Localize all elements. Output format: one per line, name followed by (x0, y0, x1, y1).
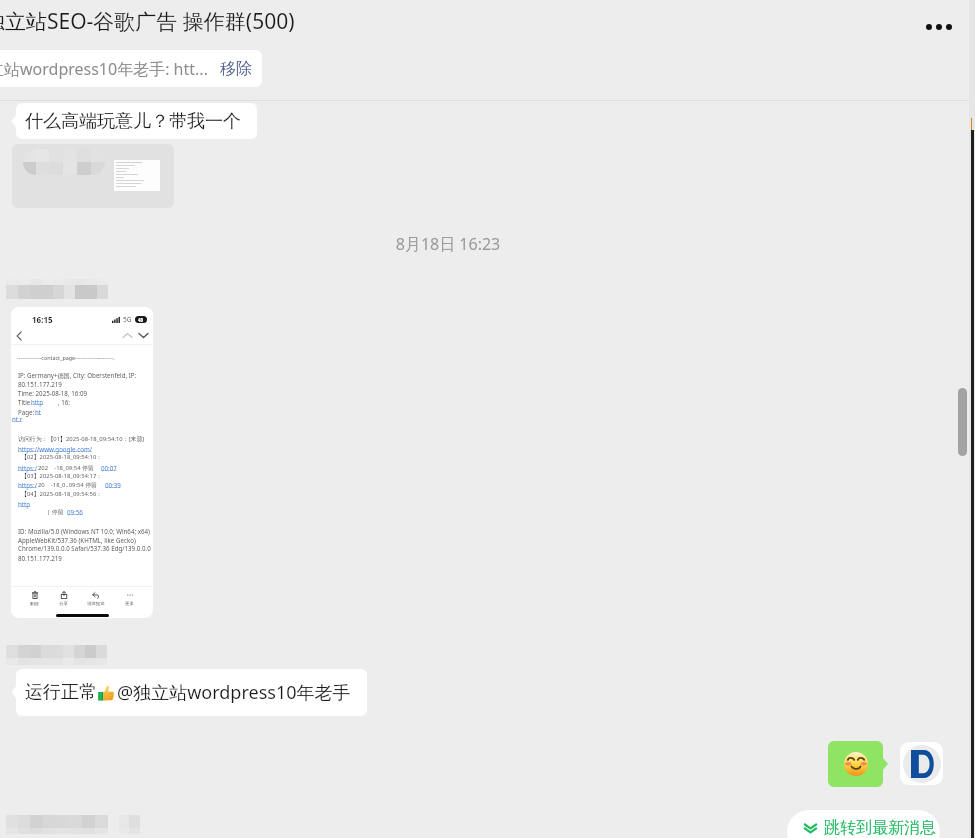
staticText: https:/ (18, 464, 38, 472)
button[interactable]: 什么高端玩意儿？带我一个 (16, 103, 257, 139)
staticText: 09:56 (67, 508, 83, 516)
staticText: Page: (18, 408, 36, 416)
staticText: http (18, 500, 31, 508)
button[interactable]: 独立站wordpress10年老手: htt... (0, 50, 262, 87)
button[interactable]: 跳转到最新消息 (787, 810, 940, 838)
button[interactable]: 浏览预览 (87, 590, 105, 607)
staticText: 00:39 (105, 481, 121, 489)
staticText: 【04】2025-08-18_09:54:56： (21, 490, 103, 498)
staticText: AppleWebKit/537.36 (KHTML, like Gecko) (18, 536, 136, 544)
staticText: https://www.google.com/ (18, 445, 92, 453)
staticText: 独立站wordpress10年老手: htt... (0, 58, 208, 80)
staticText: 移除 (220, 59, 252, 79)
button[interactable]: 移除 (220, 59, 252, 79)
staticText: 【02】2025-08-18_09:54:10： (21, 453, 103, 461)
staticText: 访问行为：【01】2025-08-18_09:54:10：[来源] (18, 435, 145, 443)
staticText: 分享 (59, 601, 68, 607)
staticText: ID: Mozilla/5.0 (Windows NT 10.0; Win64;… (18, 527, 150, 535)
button[interactable]: 删除 (30, 590, 39, 607)
staticText: 独立站SEO-谷歌广告 操作群(500) (0, 7, 295, 36)
button[interactable]: 独立站SEO-谷歌广告 操作群(500) (0, 7, 295, 36)
staticText: 更多 (125, 601, 134, 607)
staticText: 跳转到最新消息 (824, 818, 936, 838)
staticText: https:/ (18, 481, 38, 489)
button[interactable]: More options (919, 7, 959, 47)
staticText: | 停留 (47, 508, 64, 516)
staticText: http (31, 398, 44, 406)
button[interactable]: 更多 (125, 590, 134, 607)
staticText: Chrome/139.0.0.0 Safari/537.36 Edg/139.0… (18, 544, 151, 552)
staticText: 48 (138, 317, 144, 323)
button[interactable]: 分享 (59, 590, 68, 607)
button[interactable] (828, 741, 883, 787)
staticText: 80.151.177.219 (18, 380, 62, 388)
staticText: IP: Germany+德国, City: Oberstenfeld, IP: (18, 371, 137, 379)
staticText: @独立站wordpress10年老手 (117, 680, 351, 705)
staticText: 16:15 (32, 314, 53, 325)
staticText: Time: 2025-08-18, 16:09 (18, 389, 87, 397)
button[interactable]: Shared link card (12, 144, 174, 208)
button[interactable]: Avatar D (900, 742, 943, 785)
staticText: 删除 (30, 601, 39, 607)
staticText: nt.r (12, 415, 23, 423)
staticText: 【03】2025-08-18_09:54:17： (21, 472, 103, 480)
staticText: 运行正常 (25, 681, 97, 704)
staticText: ht (35, 408, 42, 416)
staticText: 什么高端玩意儿？带我一个 (25, 110, 241, 133)
staticText: 202 -18_09:54 停留 (38, 464, 94, 472)
staticText: 8月18日 16:23 (0, 233, 896, 255)
staticText: 20 -18_0..09:54 停留 (38, 481, 98, 489)
staticText: 00:07 (101, 464, 117, 472)
staticText: Title (18, 398, 31, 406)
staticText: --------------contact_page--------------… (17, 354, 115, 361)
staticText: , 16: (58, 398, 71, 406)
staticText: 浏览预览 (87, 601, 105, 607)
button[interactable]: Screenshot of visit log (11, 307, 153, 618)
staticText: 80.151.177.219 (18, 554, 62, 562)
button[interactable]: 运行正常 (16, 669, 367, 716)
staticText: 5G (123, 315, 132, 324)
